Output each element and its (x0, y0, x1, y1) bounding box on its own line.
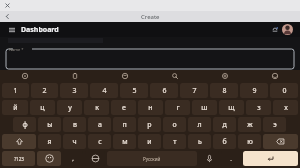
button[interactable]: з (246, 100, 271, 115)
button[interactable]: д (213, 117, 236, 132)
staticText: 6 (162, 86, 167, 96)
button[interactable]: Notifications (269, 24, 280, 35)
staticText: 5 (132, 86, 137, 96)
button[interactable]: Paste (50, 70, 100, 82)
button[interactable]: Search (150, 70, 200, 82)
staticText: н (148, 103, 153, 113)
button[interactable]: 3 (60, 83, 88, 98)
button[interactable]: ч (63, 134, 86, 149)
button[interactable]: й (2, 100, 28, 115)
button[interactable]: о (163, 117, 186, 132)
button[interactable]: 9 (240, 83, 268, 98)
button[interactable]: к (84, 100, 109, 115)
staticText: ь (198, 137, 202, 147)
button[interactable]: Русский (107, 151, 197, 166)
staticText: ш (201, 103, 208, 113)
button[interactable]: ф (13, 117, 36, 132)
button[interactable]: л (188, 117, 211, 132)
staticText: й (13, 103, 18, 113)
button[interactable]: н (138, 100, 163, 115)
staticText: ю (247, 137, 253, 147)
button[interactable]: Clipboard (0, 70, 50, 82)
other: Back (4, 13, 11, 20)
staticText: к (95, 103, 99, 113)
staticText: ч (72, 137, 77, 147)
button[interactable]: ш (192, 100, 217, 115)
staticText: х (284, 103, 288, 113)
staticText: е (122, 103, 126, 113)
button[interactable]: 0 (270, 83, 298, 98)
button[interactable]: Profile (282, 24, 293, 35)
button[interactable]: Voice input (199, 151, 219, 166)
staticText: 1 (13, 86, 18, 96)
staticText: б (222, 137, 227, 147)
staticText: Name * (9, 47, 24, 52)
button[interactable]: у (57, 100, 82, 115)
button[interactable]: Shift (2, 134, 36, 149)
staticText: э (273, 120, 277, 130)
staticText: о (172, 120, 177, 130)
button[interactable]: 5 (120, 83, 148, 98)
button[interactable]: Emoji (250, 70, 300, 82)
button[interactable]: ц (30, 100, 55, 115)
staticText: ц (40, 103, 45, 113)
staticText: с (98, 137, 102, 147)
button[interactable]: Backspace (263, 134, 298, 149)
staticText: 4 (102, 86, 107, 96)
button[interactable]: с (88, 134, 111, 149)
staticText: Русский (143, 156, 161, 162)
staticText: м (122, 137, 128, 147)
staticText: 7 (192, 86, 197, 96)
button[interactable]: я (38, 134, 61, 149)
button[interactable]: ж (238, 117, 261, 132)
button[interactable]: Stickers (100, 70, 150, 82)
button[interactable]: ю (238, 134, 261, 149)
staticText: в (73, 120, 77, 130)
staticText: , (72, 155, 74, 163)
staticText: г (176, 103, 180, 113)
button[interactable]: 4 (90, 83, 118, 98)
button[interactable]: Settings (200, 70, 250, 82)
button[interactable]: т (163, 134, 186, 149)
button[interactable]: 7 (180, 83, 208, 98)
button[interactable]: . (221, 151, 241, 166)
button[interactable]: 2 (31, 83, 58, 98)
button[interactable]: ы (38, 117, 61, 132)
button[interactable]: и (138, 134, 161, 149)
staticText: у (68, 103, 72, 113)
staticText: т (173, 137, 177, 147)
staticText: 2 (42, 86, 47, 96)
button[interactable]: в (63, 117, 86, 132)
staticText: 3 (72, 86, 77, 96)
staticText: и (147, 137, 152, 147)
staticText: 8 (222, 86, 227, 96)
button[interactable]: Name * (6, 49, 294, 69)
button[interactable]: , (63, 151, 83, 166)
staticText: я (47, 137, 52, 147)
button[interactable]: е (111, 100, 136, 115)
button[interactable]: б (213, 134, 236, 149)
button[interactable]: Enter (243, 151, 298, 166)
button[interactable]: г (165, 100, 190, 115)
button[interactable]: Menu (7, 25, 17, 35)
button[interactable]: р (138, 117, 161, 132)
button[interactable]: 1 (2, 83, 29, 98)
button[interactable]: 8 (210, 83, 238, 98)
button[interactable]: а (88, 117, 111, 132)
button[interactable]: э (263, 117, 286, 132)
button[interactable]: ь (188, 134, 211, 149)
button[interactable]: Emoji (37, 151, 61, 166)
staticText: Create (141, 13, 160, 21)
staticText: д (222, 120, 227, 130)
button[interactable]: м (113, 134, 136, 149)
staticText: п (122, 120, 127, 130)
button[interactable]: 6 (150, 83, 178, 98)
button[interactable]: х (273, 100, 298, 115)
staticText: Dashboard (21, 25, 59, 35)
staticText: ы (47, 120, 53, 130)
button[interactable]: п (113, 117, 136, 132)
button[interactable]: ?123 (2, 151, 35, 166)
staticText: ф (22, 120, 28, 130)
button[interactable]: щ (219, 100, 244, 115)
button[interactable]: Language (85, 151, 105, 166)
